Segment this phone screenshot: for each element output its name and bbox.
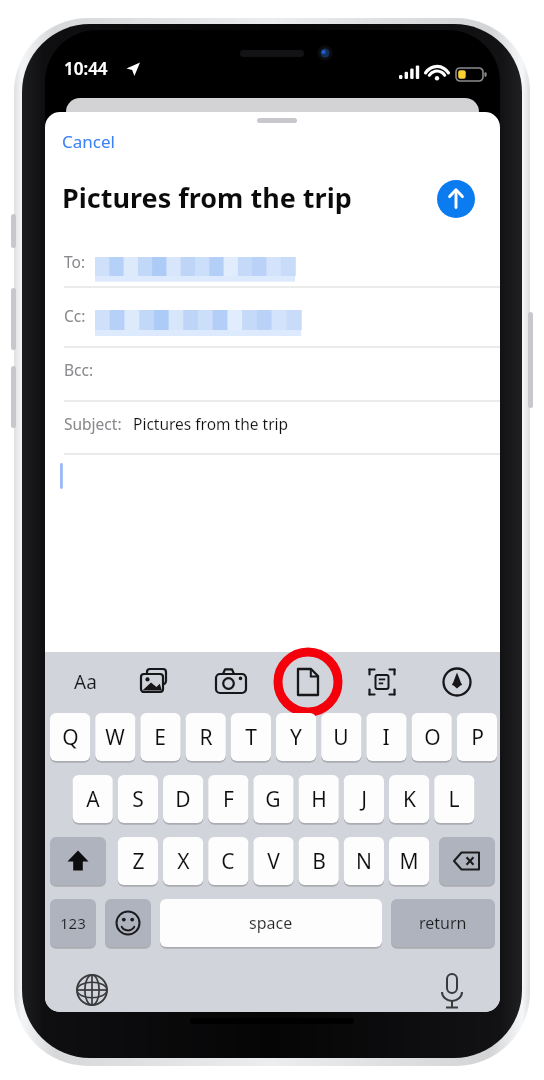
button[interactable]: F bbox=[208, 775, 248, 823]
staticText: To: bbox=[64, 251, 86, 272]
button[interactable]: X bbox=[163, 837, 203, 885]
button[interactable]: L bbox=[434, 775, 474, 823]
staticText: M bbox=[399, 847, 419, 876]
staticText: J bbox=[361, 785, 367, 814]
staticText: E bbox=[154, 723, 166, 752]
button[interactable]: Emoji bbox=[105, 899, 151, 947]
button[interactable]: N bbox=[344, 837, 384, 885]
staticText: G bbox=[265, 785, 281, 814]
button[interactable]: Switch keyboard bbox=[70, 968, 114, 1012]
staticText: V bbox=[267, 847, 280, 876]
button[interactable]: P bbox=[457, 713, 497, 761]
staticText: N bbox=[356, 847, 372, 876]
staticText: P bbox=[471, 723, 484, 752]
button[interactable]: W bbox=[95, 713, 135, 761]
button[interactable]: H bbox=[299, 775, 339, 823]
button[interactable]: J bbox=[344, 775, 384, 823]
button[interactable]: return bbox=[391, 899, 495, 947]
button[interactable]: T bbox=[231, 713, 271, 761]
button[interactable]: E bbox=[140, 713, 180, 761]
staticText: L bbox=[448, 785, 460, 814]
staticText: F bbox=[223, 785, 234, 814]
button[interactable]: Scan document bbox=[360, 660, 404, 704]
button[interactable]: C bbox=[208, 837, 248, 885]
button[interactable]: Send bbox=[437, 180, 475, 218]
staticText: X bbox=[177, 847, 190, 876]
staticText: H bbox=[311, 785, 327, 814]
button[interactable]: I bbox=[366, 713, 406, 761]
button[interactable]: Dictate bbox=[430, 968, 474, 1012]
button[interactable]: S bbox=[118, 775, 158, 823]
staticText: 123 bbox=[60, 913, 86, 933]
staticText: Aa bbox=[74, 669, 97, 695]
button[interactable]: Q bbox=[50, 713, 90, 761]
staticText: S bbox=[132, 785, 144, 814]
button[interactable]: Photo library bbox=[135, 660, 179, 704]
button[interactable]: M bbox=[389, 837, 429, 885]
staticText: C bbox=[221, 847, 235, 876]
staticText: Pictures from the trip bbox=[133, 413, 289, 434]
staticText: space bbox=[249, 912, 293, 934]
button[interactable]: space bbox=[160, 899, 382, 947]
button[interactable]: G bbox=[253, 775, 293, 823]
button[interactable]: Y bbox=[276, 713, 316, 761]
button[interactable]: Take photo bbox=[209, 660, 253, 704]
staticText: return bbox=[419, 912, 467, 934]
button[interactable]: Insert document bbox=[286, 660, 330, 704]
button[interactable]: K bbox=[389, 775, 429, 823]
staticText: O bbox=[424, 723, 441, 752]
button[interactable]: Markup bbox=[435, 660, 479, 704]
button[interactable]: D bbox=[163, 775, 203, 823]
staticText: 10:44 bbox=[64, 57, 108, 80]
button[interactable]: Shift bbox=[50, 837, 106, 885]
staticText: Subject: bbox=[64, 413, 122, 434]
staticText: B bbox=[312, 847, 326, 876]
button[interactable]: Backspace bbox=[439, 837, 495, 885]
button[interactable]: Z bbox=[118, 837, 158, 885]
button[interactable]: O bbox=[412, 713, 452, 761]
staticText: I bbox=[382, 723, 390, 752]
button[interactable]: U bbox=[321, 713, 361, 761]
button[interactable]: 123 bbox=[50, 899, 96, 947]
staticText: Cancel bbox=[62, 130, 115, 153]
staticText: R bbox=[199, 723, 213, 752]
staticText: U bbox=[333, 723, 349, 752]
staticText: D bbox=[175, 785, 191, 814]
staticText: Y bbox=[290, 723, 302, 752]
button[interactable]: R bbox=[186, 713, 226, 761]
staticText: Cc: bbox=[64, 305, 86, 326]
staticText: Bcc: bbox=[64, 359, 94, 380]
button[interactable]: A bbox=[73, 775, 113, 823]
staticText: A bbox=[86, 785, 100, 814]
staticText: W bbox=[105, 723, 125, 752]
staticText: K bbox=[403, 785, 416, 814]
button[interactable]: Aa bbox=[64, 664, 106, 700]
button[interactable]: V bbox=[253, 837, 293, 885]
button[interactable]: Cancel bbox=[62, 126, 144, 156]
staticText: T bbox=[245, 723, 257, 752]
staticText: Q bbox=[62, 723, 79, 752]
button[interactable]: B bbox=[299, 837, 339, 885]
staticText: Pictures from the trip bbox=[62, 179, 352, 216]
staticText: Z bbox=[132, 847, 145, 876]
